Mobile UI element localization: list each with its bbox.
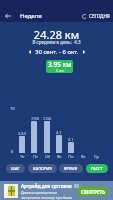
- staticText: Ср: [94, 154, 99, 159]
- staticText: РАССТ: [91, 166, 103, 171]
- button[interactable]: 3.95 км: [46, 60, 73, 73]
- staticText: 24.28 км: [0, 27, 113, 42]
- staticText: 3.63: [18, 131, 26, 136]
- staticText: экстренная помощь при боли: [21, 195, 72, 200]
- button[interactable]: КАЛОРИЯ: [28, 164, 57, 173]
- staticText: Сб: [45, 154, 50, 159]
- staticText: 6 окт.: [56, 69, 65, 73]
- staticText: КАЛОРИЯ: [33, 166, 52, 171]
- staticText: Вт: [81, 154, 86, 159]
- button[interactable]: ВРЕМЯ: [59, 164, 83, 173]
- staticText: 30 сент. - 6 окт.: [35, 48, 79, 56]
- staticText: 0: [11, 149, 14, 154]
- button[interactable]: Back: [0, 9, 16, 22]
- staticText: 3.1: [68, 137, 74, 142]
- staticText: 3.95 км: [48, 60, 72, 69]
- staticText: 4.1: [56, 130, 62, 135]
- staticText: Неделя: [20, 12, 42, 20]
- staticText: ВРЕМЯ: [64, 166, 78, 171]
- staticText: Вс: [57, 154, 62, 159]
- staticText: 7.04: [43, 116, 51, 121]
- button[interactable]: ШАГ: [6, 164, 25, 173]
- button[interactable]: Previous week: [25, 47, 35, 57]
- staticText: В среднем в день: 4.3: [0, 39, 113, 45]
- staticText: 10: [10, 106, 15, 111]
- staticText: СМОТРЕТЬ: [81, 189, 105, 195]
- staticText: Пт: [33, 154, 38, 159]
- staticText: Чт: [20, 154, 25, 159]
- button[interactable]: РАССТ: [86, 164, 108, 173]
- staticText: 7.56: [31, 116, 39, 121]
- button[interactable]: Next week: [79, 47, 89, 57]
- button[interactable]: СЕГОДНЯ: [79, 11, 113, 21]
- staticText: СЕГОДНЯ: [89, 13, 110, 19]
- staticText: ШАГ: [11, 166, 20, 171]
- staticText: Пн: [68, 154, 74, 159]
- staticText: Давняя проверенная: [21, 190, 58, 195]
- button[interactable]: СМОТРЕТЬ: [77, 187, 108, 196]
- staticText: Артрейд для суставов: [21, 183, 72, 189]
